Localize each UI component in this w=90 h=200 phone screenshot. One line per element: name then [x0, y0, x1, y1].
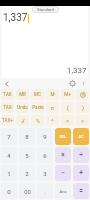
button[interactable]: Paste [31, 102, 44, 113]
staticText: TAX [3, 92, 12, 97]
staticText: > [81, 118, 84, 124]
staticText: Standard [37, 7, 54, 12]
button[interactable]: 5 [19, 147, 35, 163]
button[interactable]: 7 [1, 128, 17, 145]
button[interactable]: MR [16, 89, 29, 100]
staticText: 8 [25, 133, 29, 140]
button[interactable]: M+ [61, 89, 74, 100]
staticText: π [51, 105, 54, 111]
button[interactable]: − [55, 165, 71, 181]
staticText: 1 [7, 170, 11, 177]
staticText: 9 [43, 133, 47, 140]
staticText: ( [67, 105, 69, 111]
staticText: DEL [59, 134, 67, 139]
button[interactable]: TAX [1, 89, 14, 100]
button[interactable]: √ [16, 115, 29, 126]
button[interactable]: 00 [19, 183, 35, 199]
staticText: AC [78, 134, 84, 139]
button[interactable]: × [55, 147, 71, 163]
button[interactable]: ÷ [73, 147, 89, 163]
staticText: 1,337 [3, 12, 28, 24]
button[interactable]: 3 [37, 165, 53, 181]
button[interactable]: > [76, 115, 89, 126]
button[interactable]: ) [76, 102, 89, 113]
button[interactable]: 1 [1, 165, 17, 181]
button[interactable]: + [73, 165, 89, 181]
button[interactable]: 9 [37, 128, 53, 145]
button[interactable]: History [76, 89, 89, 100]
button[interactable]: ( [61, 102, 74, 113]
staticText: √ [21, 118, 25, 124]
staticText: 7 [7, 133, 11, 140]
button[interactable]: 0 [1, 183, 17, 199]
staticText: 1,337 [67, 66, 87, 75]
staticText: M+ [64, 92, 71, 97]
staticText: MR [19, 92, 26, 97]
staticText: − [61, 169, 65, 177]
button[interactable]: More options [79, 79, 88, 88]
staticText: × [61, 151, 65, 159]
button[interactable]: 2 [19, 165, 35, 181]
staticText: 2 [25, 170, 29, 177]
staticText: = [79, 187, 83, 195]
button[interactable]: TAX- [1, 102, 14, 113]
staticText: ) [82, 105, 84, 111]
button[interactable]: = [73, 183, 89, 199]
button[interactable]: TAX+ [1, 115, 14, 126]
staticText: MC [34, 92, 41, 97]
staticText: Paste [32, 105, 44, 110]
staticText: 0 [7, 188, 11, 195]
staticText: 3 [43, 170, 47, 177]
staticText: Ans [59, 189, 67, 194]
staticText: 4 [7, 152, 11, 159]
button[interactable]: < [61, 115, 74, 126]
button[interactable]: 6 [37, 147, 53, 163]
button[interactable]: π [46, 102, 59, 113]
staticText: 00 [24, 188, 31, 195]
button[interactable]: M- [46, 89, 59, 100]
button[interactable]: AC [73, 128, 89, 145]
button[interactable]: Undo [16, 102, 29, 113]
staticText: . [44, 188, 46, 195]
staticText: M- [50, 92, 56, 97]
button[interactable]: MC [31, 89, 44, 100]
button[interactable]: 8 [19, 128, 35, 145]
staticText: TAX+ [2, 118, 13, 123]
button[interactable]: Ans [55, 183, 71, 199]
staticText: ^ [51, 118, 54, 124]
button[interactable]: Standard [37, 7, 54, 12]
button[interactable]: % [31, 115, 44, 126]
staticText: < [66, 118, 69, 124]
staticText: + [79, 169, 83, 177]
button[interactable]: Expand history [2, 79, 11, 88]
staticText: Undo [17, 105, 28, 110]
button[interactable]: Settings [68, 79, 77, 88]
staticText: 5 [25, 152, 29, 159]
button[interactable]: DEL [55, 128, 71, 145]
staticText: TAX- [3, 105, 13, 110]
button[interactable]: 4 [1, 147, 17, 163]
button[interactable]: ^ [46, 115, 59, 126]
staticText: % [36, 118, 40, 124]
staticText: 6 [43, 152, 47, 159]
staticText: ÷ [79, 151, 83, 159]
